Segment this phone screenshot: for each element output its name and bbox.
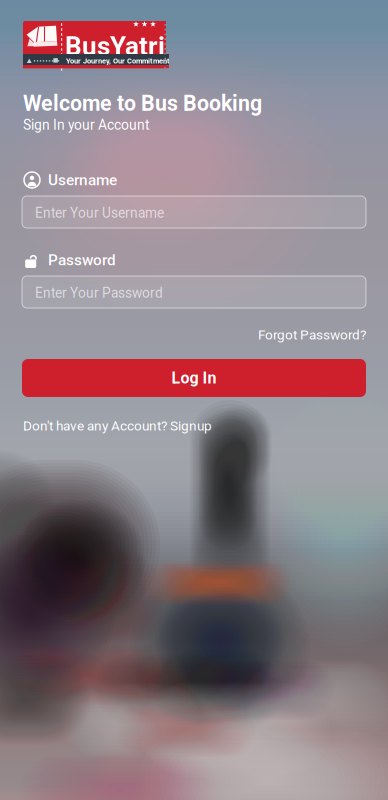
staticText: Log In	[171, 369, 216, 387]
staticText: BusYatri	[65, 31, 165, 62]
button[interactable]: Don't have any Account? Signup	[23, 418, 212, 434]
staticText: Don't have any Account? Signup	[23, 418, 212, 434]
staticText: Forgot Password?	[258, 327, 366, 343]
staticText: Enter Your Username	[35, 205, 164, 221]
staticText: Username	[48, 171, 117, 189]
staticText: Enter Your Password	[35, 285, 163, 301]
staticText: Password	[48, 251, 116, 269]
button[interactable]: Forgot Password?	[258, 327, 366, 343]
staticText: Your Journey, Our Commitment.	[66, 57, 172, 65]
button[interactable]: Log In	[22, 359, 366, 397]
staticText: Sign In your Account	[23, 117, 150, 133]
staticText: Welcome to Bus Booking	[23, 91, 262, 116]
